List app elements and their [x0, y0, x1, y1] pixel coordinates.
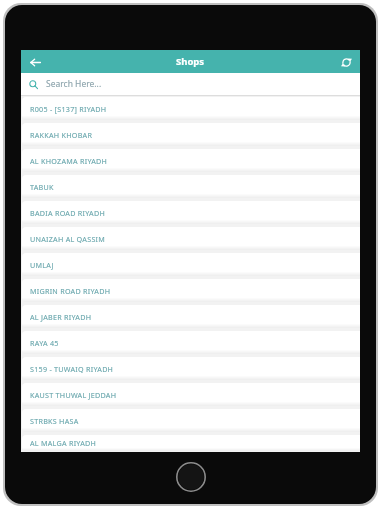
- button[interactable]: RAYA 45: [21, 331, 360, 355]
- staticText: RAKKAH KHOBAR: [30, 130, 93, 140]
- staticText: STRBKS HASA: [30, 416, 79, 426]
- button[interactable]: BADIA ROAD RIYADH: [21, 201, 360, 225]
- staticText: AL KHOZAMA RIYADH: [30, 156, 108, 166]
- staticText: UMLAJ: [30, 260, 54, 270]
- button[interactable]: KAUST THUWAL JEDDAH: [21, 383, 360, 407]
- button[interactable]: AL MALGA RIYADH: [21, 435, 360, 451]
- staticText: UNAIZAH AL QASSIM: [30, 234, 106, 244]
- staticText: Search Here...: [46, 78, 102, 90]
- button[interactable]: Search Here...: [21, 73, 360, 95]
- staticText: S159 - TUWAIQ RIYADH: [30, 364, 114, 374]
- button[interactable]: AL KHOZAMA RIYADH: [21, 149, 360, 173]
- staticText: R005 - [S137] RIYADH: [30, 104, 107, 114]
- button[interactable]: STRBKS HASA: [21, 409, 360, 433]
- staticText: Shops: [176, 55, 205, 68]
- button[interactable]: Refresh: [337, 53, 355, 71]
- button[interactable]: AL JABER RIYADH: [21, 305, 360, 329]
- button[interactable]: UMLAJ: [21, 253, 360, 277]
- staticText: KAUST THUWAL JEDDAH: [30, 390, 117, 400]
- button[interactable]: R005 - [S137] RIYADH: [21, 97, 360, 121]
- staticText: AL JABER RIYADH: [30, 312, 92, 322]
- staticText: RAYA 45: [30, 338, 59, 348]
- button[interactable]: Back: [26, 53, 44, 71]
- button[interactable]: RAKKAH KHOBAR: [21, 123, 360, 147]
- staticText: MIGRIN ROAD RIYADH: [30, 286, 111, 296]
- button[interactable]: S159 - TUWAIQ RIYADH: [21, 357, 360, 381]
- staticText: BADIA ROAD RIYADH: [30, 208, 106, 218]
- staticText: TABUK: [30, 182, 54, 192]
- staticText: AL MALGA RIYADH: [30, 438, 97, 448]
- button[interactable]: UNAIZAH AL QASSIM: [21, 227, 360, 251]
- button[interactable]: MIGRIN ROAD RIYADH: [21, 279, 360, 303]
- button[interactable]: TABUK: [21, 175, 360, 199]
